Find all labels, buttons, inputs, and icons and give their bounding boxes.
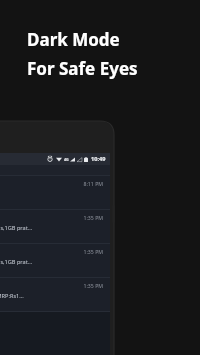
staticText: 4G <box>64 157 69 162</box>
staticText: husar Unlimited calls,1GB prat... <box>0 258 33 266</box>
staticText: Dark Mode <box>27 28 120 51</box>
button[interactable]: 1:35 PM <box>0 244 110 277</box>
staticText: 8:11 PM <box>0 180 103 187</box>
button[interactable]: 1:35 PM <box>0 210 110 243</box>
staticText: -09-2019 01:35PM,MRP:Rs1... <box>0 292 24 300</box>
button[interactable]: 8:11 PM <box>0 176 110 209</box>
staticText: 1:35 PM <box>0 248 103 255</box>
staticText: husar Unlimited calls,1GB prat... <box>0 224 33 232</box>
staticText: 1:35 PM <box>0 282 103 289</box>
staticText: For Safe Eyes <box>27 57 138 80</box>
button[interactable]: 1:35 PM <box>0 278 110 311</box>
staticText: 10:49 <box>91 155 106 163</box>
staticText: 1:35 PM <box>0 214 103 221</box>
